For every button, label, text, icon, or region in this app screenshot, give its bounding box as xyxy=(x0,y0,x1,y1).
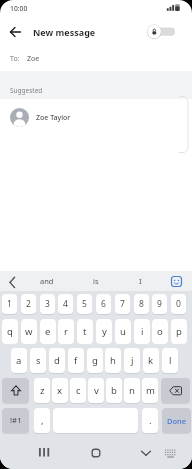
button[interactable]: d xyxy=(49,348,65,373)
button[interactable] xyxy=(2,378,29,403)
button[interactable] xyxy=(6,24,24,40)
staticText: c xyxy=(76,384,81,397)
button[interactable]: z xyxy=(34,378,50,403)
button[interactable]: 2 xyxy=(21,294,36,314)
button[interactable] xyxy=(146,24,178,40)
button[interactable]: l xyxy=(162,348,178,373)
button[interactable]: 4 xyxy=(58,294,73,314)
staticText: 6 xyxy=(101,298,106,310)
staticText: i xyxy=(141,325,144,338)
button[interactable] xyxy=(88,445,104,461)
staticText: 4 xyxy=(63,298,68,310)
button[interactable] xyxy=(161,378,190,403)
staticText: 2 xyxy=(26,298,31,310)
staticText: Done xyxy=(167,416,187,426)
button[interactable]: 0 xyxy=(171,294,186,314)
staticText: j xyxy=(131,354,134,367)
button[interactable]: h xyxy=(105,348,121,373)
button[interactable]: , xyxy=(34,408,50,433)
button[interactable]: f xyxy=(68,348,84,373)
button[interactable]: To: xyxy=(0,46,192,71)
button[interactable]: 1 xyxy=(2,294,17,314)
staticText: q xyxy=(7,325,13,338)
staticText: is xyxy=(93,276,99,286)
button[interactable]: r xyxy=(58,319,74,344)
staticText: , xyxy=(41,414,44,427)
button[interactable]: n xyxy=(124,378,140,403)
staticText: !#1 xyxy=(10,415,22,426)
button[interactable]: 5 xyxy=(77,294,92,314)
staticText: and xyxy=(40,276,54,286)
button[interactable]: j xyxy=(124,348,140,373)
button[interactable]: v xyxy=(88,378,104,403)
staticText: b xyxy=(111,384,117,397)
staticText: 10:00 xyxy=(10,4,28,13)
button[interactable]: Zoe Taylor xyxy=(0,99,192,137)
button[interactable]: 3 xyxy=(40,294,55,314)
button[interactable]: 9 xyxy=(152,294,167,314)
staticText: x xyxy=(57,384,63,397)
button[interactable]: b xyxy=(106,378,122,403)
staticText: w xyxy=(25,325,33,338)
staticText: l xyxy=(169,354,172,367)
staticText: . xyxy=(149,414,152,427)
staticText: Suggested xyxy=(10,86,43,95)
button[interactable]: i xyxy=(134,319,150,344)
staticText: 9 xyxy=(157,298,162,310)
staticText: 3 xyxy=(45,298,50,310)
staticText: h xyxy=(110,354,116,367)
button[interactable]: k xyxy=(143,348,159,373)
button[interactable]: g xyxy=(87,348,103,373)
staticText: 7 xyxy=(120,298,125,310)
staticText: Zoe xyxy=(27,54,40,64)
button[interactable]: w xyxy=(21,319,37,344)
button[interactable]: s xyxy=(30,348,46,373)
button[interactable]: a xyxy=(11,348,27,373)
staticText: 1 xyxy=(7,298,12,310)
button[interactable]: 8 xyxy=(134,294,149,314)
staticText: New message xyxy=(33,26,96,38)
staticText: r xyxy=(64,325,68,338)
staticText: n xyxy=(129,384,135,397)
button[interactable]: q xyxy=(2,319,18,344)
staticText: 5 xyxy=(82,298,87,310)
button[interactable]: !#1 xyxy=(2,408,29,433)
button[interactable]: p xyxy=(171,319,187,344)
button[interactable] xyxy=(36,444,52,460)
button[interactable]: e xyxy=(40,319,56,344)
staticText: 8 xyxy=(139,298,144,310)
button[interactable]: 6 xyxy=(96,294,111,314)
staticText: g xyxy=(92,354,98,367)
staticText: m xyxy=(146,384,155,397)
staticText: k xyxy=(148,354,154,367)
button[interactable]: x xyxy=(52,378,68,403)
button[interactable]: m xyxy=(142,378,158,403)
staticText: t xyxy=(83,325,87,338)
staticText: y xyxy=(102,325,107,338)
staticText: e xyxy=(45,325,51,338)
staticText: Zoe Taylor xyxy=(36,113,71,123)
staticText: To: xyxy=(10,54,20,64)
button[interactable]: o xyxy=(152,319,168,344)
staticText: u xyxy=(120,325,126,338)
staticText: I xyxy=(139,276,142,286)
staticText: f xyxy=(74,354,78,367)
button[interactable]: y xyxy=(96,319,112,344)
staticText: d xyxy=(54,354,60,367)
button[interactable] xyxy=(138,445,154,461)
staticText: o xyxy=(157,325,163,338)
button[interactable]: u xyxy=(115,319,131,344)
staticText: 0 xyxy=(176,298,181,310)
staticText: z xyxy=(40,384,45,397)
button[interactable]: t xyxy=(77,319,93,344)
staticText: s xyxy=(36,354,41,367)
staticText: a xyxy=(16,354,22,367)
button[interactable]: c xyxy=(70,378,86,403)
button[interactable]: 7 xyxy=(115,294,130,314)
staticText: v xyxy=(94,384,99,397)
staticText: p xyxy=(176,325,182,338)
button[interactable]: Done xyxy=(162,408,191,433)
button[interactable]: . xyxy=(142,408,158,433)
